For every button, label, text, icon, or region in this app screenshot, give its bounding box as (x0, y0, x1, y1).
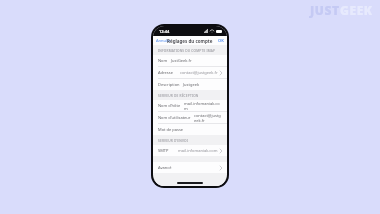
staticText: JUST (310, 2, 340, 18)
staticText: contact@justgeek.fr (194, 113, 222, 123)
button[interactable]: Mot de passe (153, 124, 227, 135)
staticText: Annuler (156, 38, 171, 43)
staticText: contact@justgeek.fr (180, 70, 218, 75)
staticText: GEEK (340, 2, 373, 18)
staticText: 12:44 (159, 29, 170, 34)
staticText: Avancé (158, 165, 172, 170)
staticText: Nom d'hôte (158, 103, 181, 108)
staticText: INFORMATIONS DU COMPTE IMAP (158, 49, 216, 53)
button[interactable]: Nom d'utilisateur (153, 112, 227, 123)
staticText: Adresse (158, 70, 173, 75)
staticText: SMTP (158, 148, 169, 153)
button[interactable]: Avancé (153, 162, 227, 173)
staticText: Réglages du compte (167, 38, 213, 44)
staticText: Nom d'utilisateur (158, 115, 191, 120)
staticText: JustGeek.fr (171, 58, 192, 63)
button[interactable]: Description (153, 79, 227, 90)
staticText: mail.infomaniak.com (184, 101, 222, 111)
staticText: Mot de passe (158, 127, 184, 132)
button[interactable]: SMTP (153, 145, 227, 156)
staticText: OK (218, 38, 224, 43)
staticText: Nom (158, 58, 168, 63)
button[interactable]: Adresse (153, 67, 227, 78)
staticText: mail.infomaniak.com (178, 148, 218, 153)
button[interactable]: Nom (153, 55, 227, 66)
staticText: Justgeek (183, 82, 200, 87)
button[interactable]: Nom d'hôte (153, 100, 227, 111)
staticText: SERVEUR D'ENVOI (158, 139, 189, 143)
staticText: Description (158, 82, 180, 87)
staticText: SERVEUR DE RÉCEPTION (158, 94, 199, 98)
button[interactable]: Annuler (153, 37, 174, 44)
button[interactable]: OK (215, 37, 227, 44)
